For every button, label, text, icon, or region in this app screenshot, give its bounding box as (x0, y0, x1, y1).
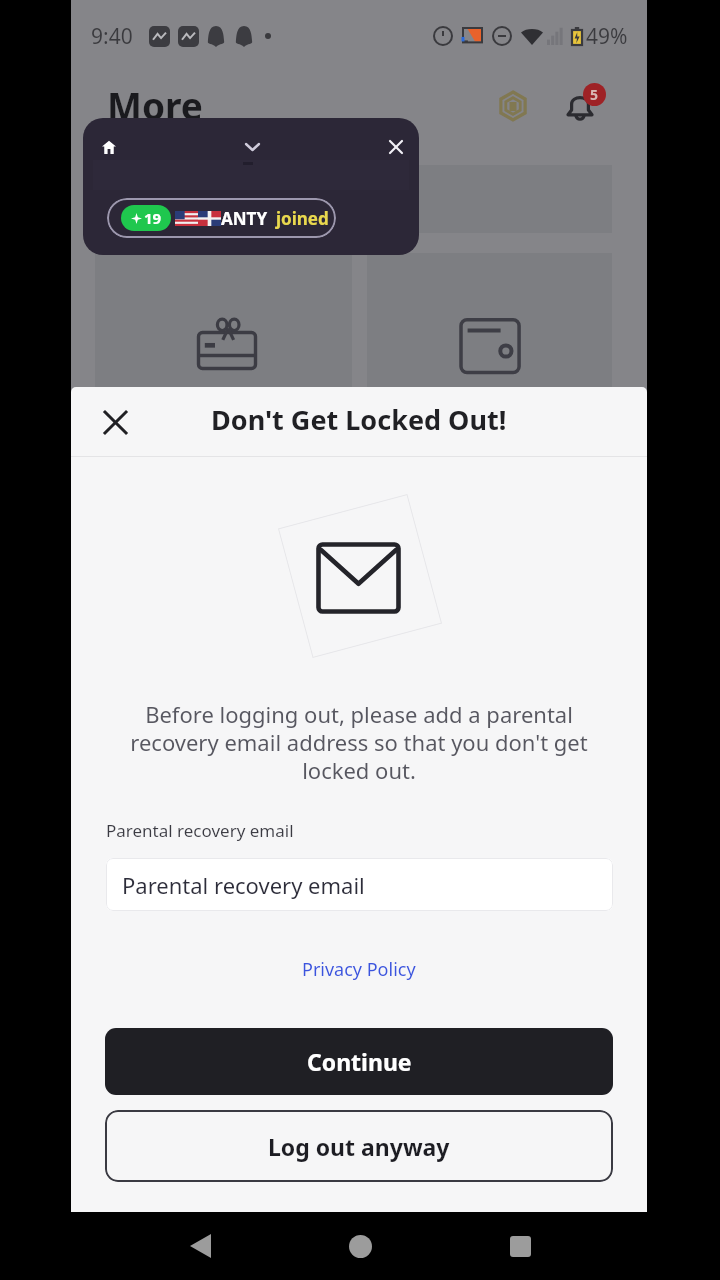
button[interactable]: Log out anyway (105, 1110, 613, 1182)
button[interactable]: Recent apps (492, 1218, 548, 1274)
staticText: Log out anyway (268, 1131, 450, 1162)
staticText: More (107, 80, 203, 130)
button[interactable]: Notifications (554, 81, 606, 133)
button[interactable]: Back (172, 1218, 228, 1274)
staticText: 19 (144, 208, 162, 228)
staticText: Don't Get Locked Out! (211, 401, 507, 438)
button[interactable]: Continue (105, 1028, 613, 1095)
staticText: Parental recovery email (122, 870, 365, 900)
staticText: joined (276, 207, 329, 230)
button[interactable]: Privacy Policy (302, 957, 416, 982)
button[interactable]: Rewards (487, 80, 539, 132)
staticText: 9:40 (91, 22, 133, 51)
staticText: Before logging out, please add a parenta… (117, 699, 601, 785)
staticText: 5 (590, 85, 599, 104)
button[interactable]: Dismiss (382, 133, 410, 161)
button[interactable]: Parental recovery email (106, 858, 613, 911)
staticText: Parental recovery email (106, 819, 294, 842)
button[interactable]: Home (83, 118, 419, 255)
staticText: 49% (586, 22, 628, 50)
staticText: Continue (307, 1046, 412, 1077)
button[interactable]: Collapse (238, 133, 266, 161)
staticText: ANTY (221, 207, 268, 230)
button[interactable]: Home (332, 1218, 388, 1274)
button[interactable]: Close (84, 391, 146, 453)
button[interactable]: Home (95, 133, 123, 161)
button[interactable]: 19 (107, 198, 336, 238)
